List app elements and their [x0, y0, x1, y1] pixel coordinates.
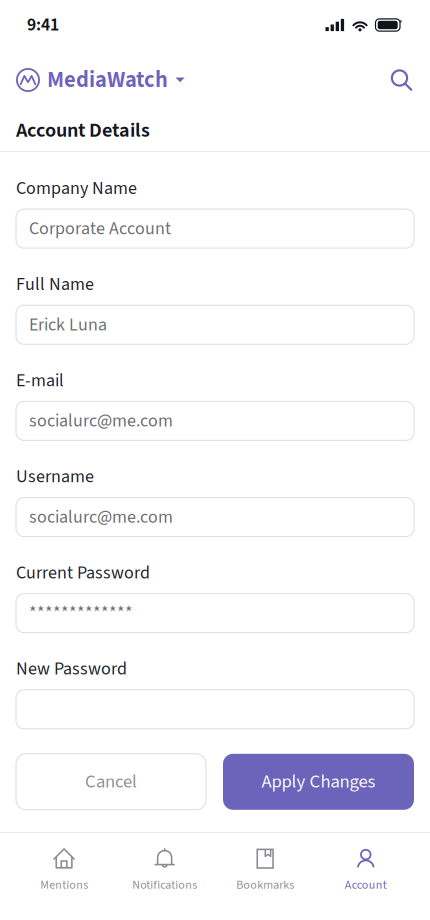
staticText: socialurc@me.com	[29, 408, 173, 434]
staticText: 9:41	[27, 12, 59, 38]
staticText: MediaWatch	[47, 64, 168, 96]
staticText: Current Password	[16, 560, 150, 586]
staticText: Cancel	[85, 768, 137, 795]
staticText: Account Details	[16, 116, 150, 145]
staticText: Notifications	[132, 876, 197, 894]
staticText: Apply Changes	[261, 768, 375, 795]
staticText: *************	[29, 600, 133, 626]
staticText: Company Name	[16, 175, 137, 201]
staticText: Erick Luna	[29, 312, 107, 337]
staticText: Corporate Account	[29, 216, 171, 241]
button[interactable]: Notifications	[114, 833, 215, 920]
staticText: E-mail	[16, 368, 64, 393]
button[interactable]: Account	[315, 833, 416, 920]
staticText: Username	[16, 464, 94, 489]
staticText: Account	[345, 876, 387, 894]
button[interactable]: Bookmarks	[215, 833, 315, 920]
button[interactable]: Search	[382, 60, 413, 99]
staticText: Full Name	[16, 272, 94, 297]
staticText: Mentions	[40, 876, 88, 894]
staticText: Bookmarks	[236, 876, 294, 894]
button[interactable]: Cancel	[16, 754, 206, 810]
staticText: socialurc@me.com	[29, 504, 173, 530]
button[interactable]: MediaWatch	[16, 55, 185, 105]
button[interactable]: Apply Changes	[223, 754, 414, 810]
staticText: New Password	[16, 656, 127, 682]
button[interactable]: Mentions	[14, 833, 114, 920]
